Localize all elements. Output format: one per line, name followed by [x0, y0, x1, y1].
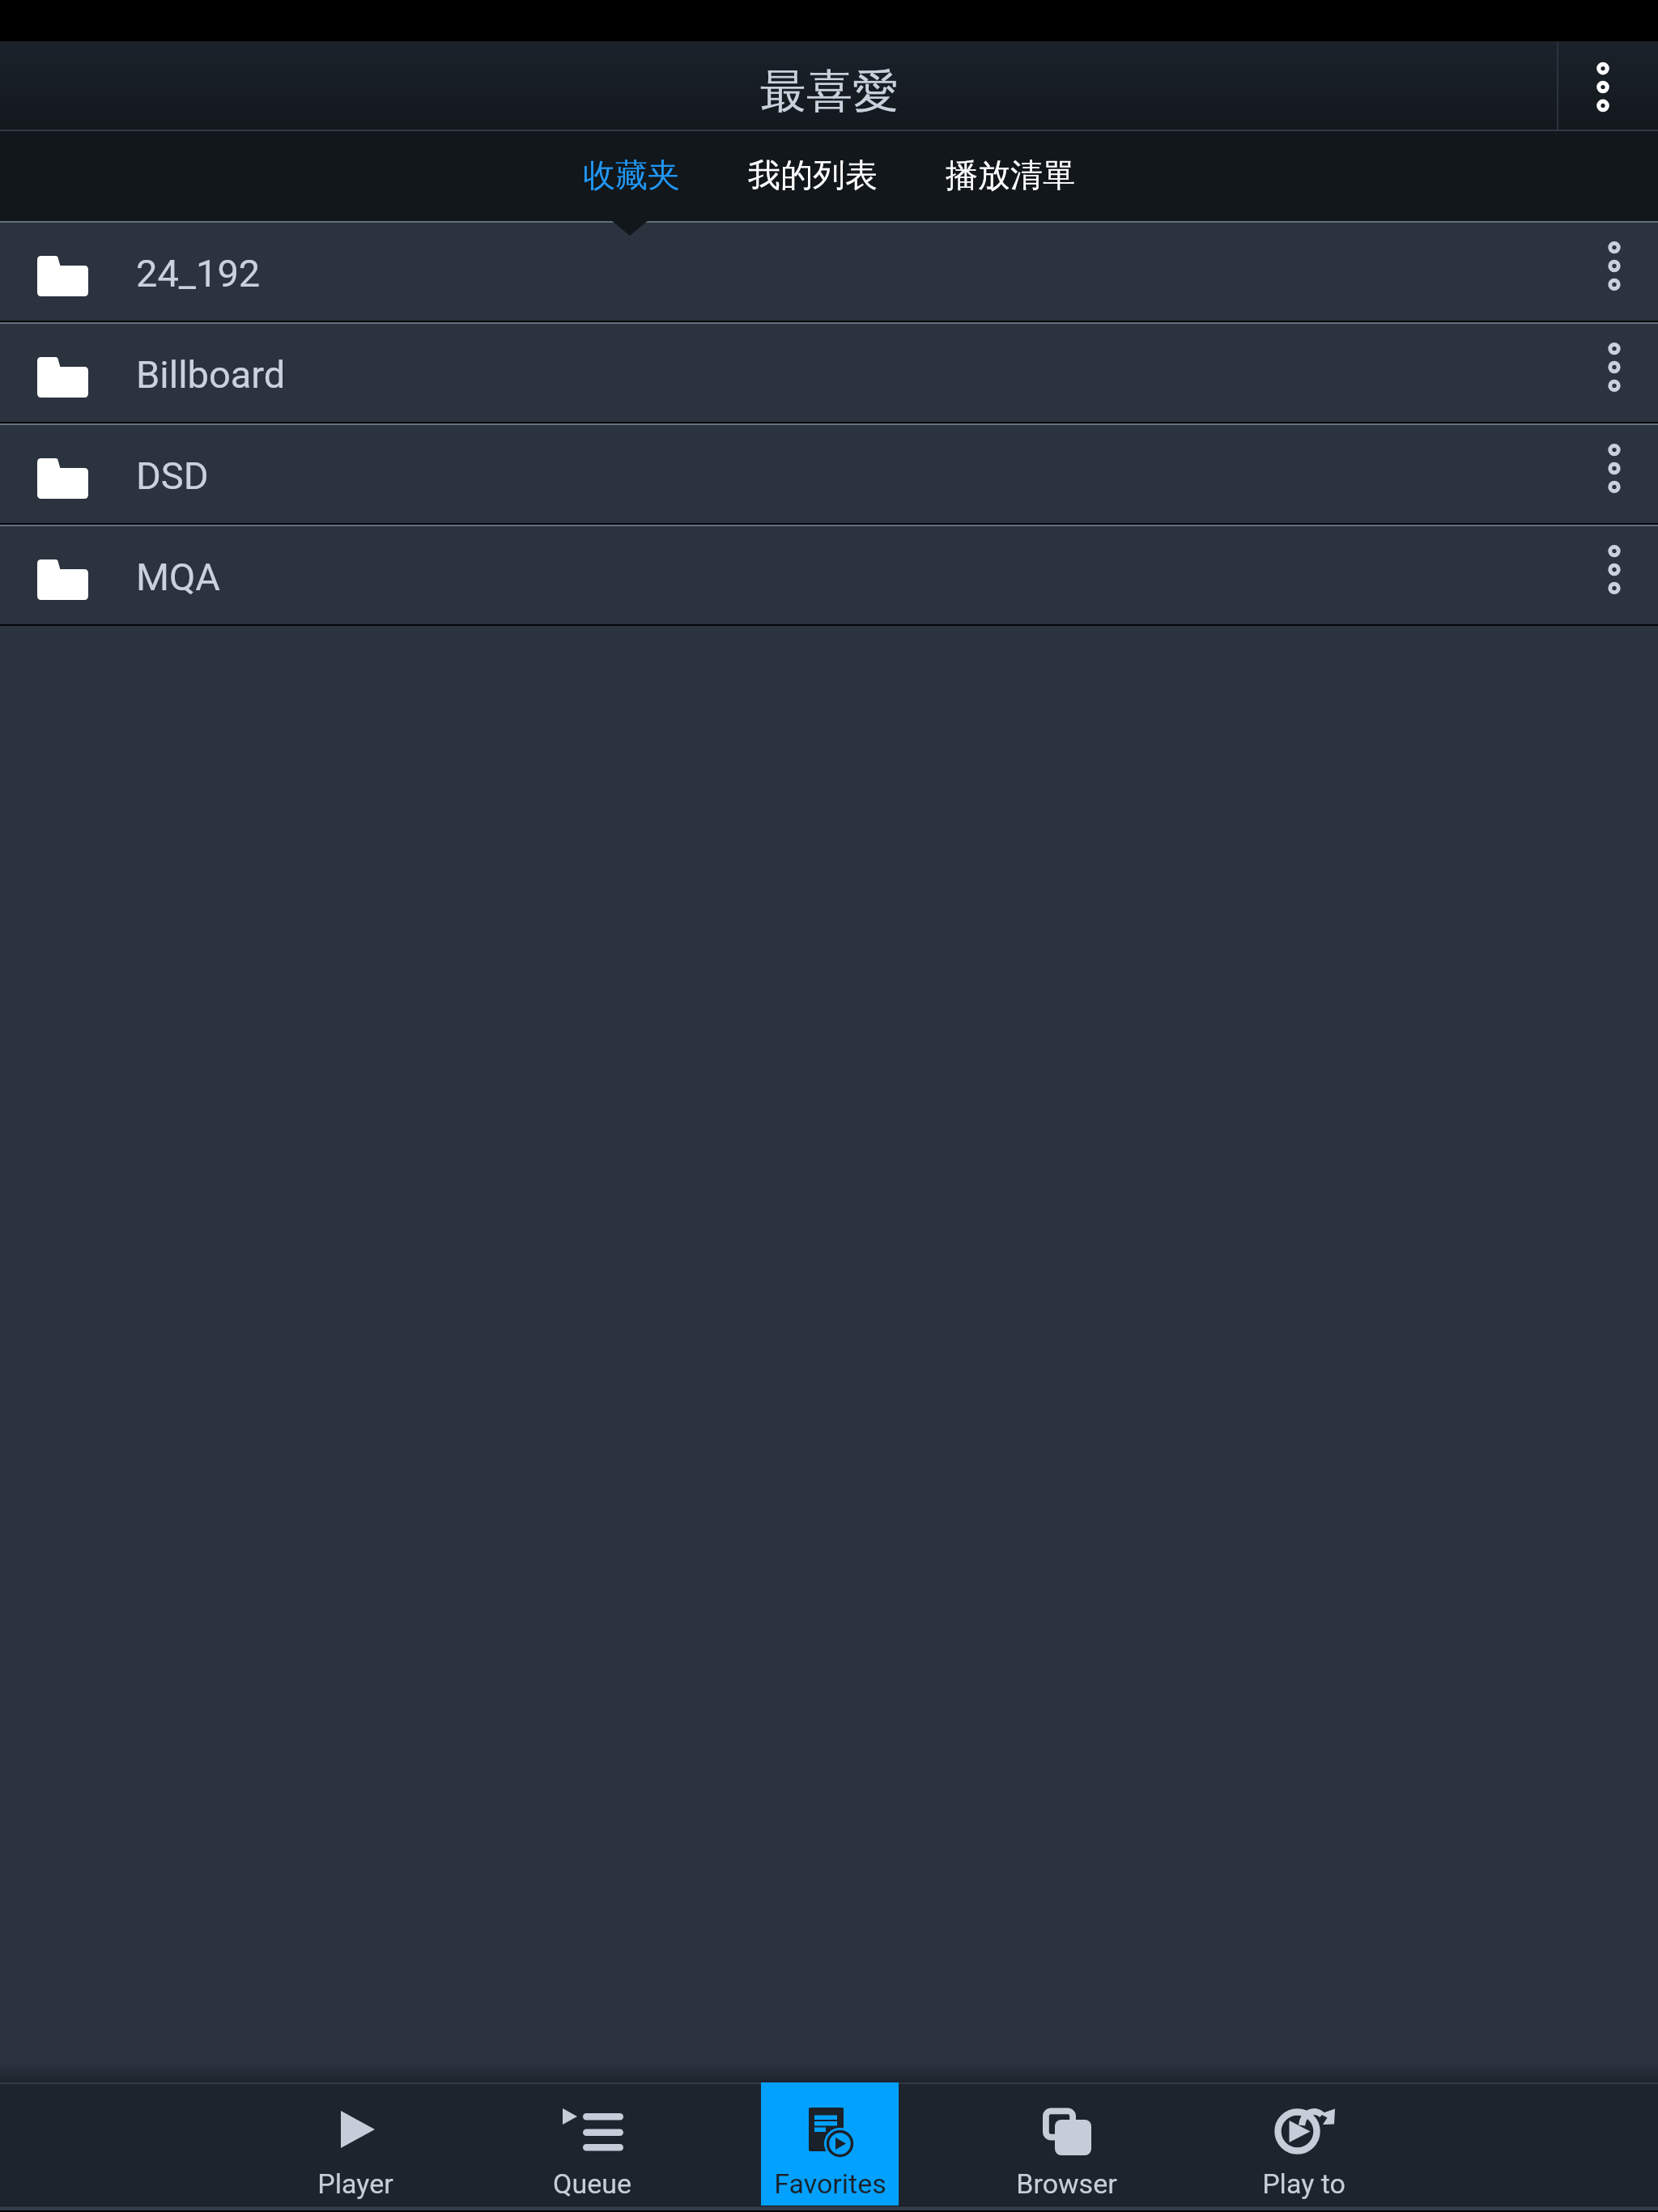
button[interactable]: More options [1548, 41, 1658, 131]
staticText: 播放清單 [946, 155, 1075, 195]
button[interactable]: MQA [0, 526, 1658, 624]
staticText: Billboard [136, 352, 286, 397]
staticText: DSD [136, 453, 209, 498]
button[interactable]: Item options [1570, 425, 1658, 523]
button[interactable]: Item options [1570, 223, 1658, 321]
button[interactable]: Queue [474, 2082, 711, 2212]
staticText: Queue [553, 2167, 631, 2200]
button[interactable]: Item options [1570, 324, 1658, 422]
staticText: MQA [136, 555, 221, 599]
staticText: 收藏夹 [583, 155, 680, 195]
button[interactable]: 收藏夹 [566, 142, 697, 211]
button[interactable]: Play to [1185, 2082, 1422, 2212]
staticText: Browser [1016, 2167, 1117, 2200]
staticText: 24_192 [136, 251, 261, 296]
button[interactable]: Item options [1570, 526, 1658, 624]
staticText: Play to [1262, 2167, 1346, 2200]
button[interactable]: Favorites [711, 2082, 948, 2212]
staticText: 最喜愛 [760, 62, 899, 121]
button[interactable]: 播放清單 [929, 142, 1092, 211]
button[interactable]: Billboard [0, 324, 1658, 422]
staticText: Favorites [774, 2167, 886, 2200]
button[interactable]: Browser [948, 2082, 1185, 2212]
staticText: Player [317, 2167, 393, 2200]
button[interactable]: Player [236, 2082, 474, 2212]
button[interactable]: 我的列表 [731, 142, 895, 211]
button[interactable]: 24_192 [0, 223, 1658, 321]
staticText: 我的列表 [748, 155, 878, 195]
button[interactable]: DSD [0, 425, 1658, 523]
